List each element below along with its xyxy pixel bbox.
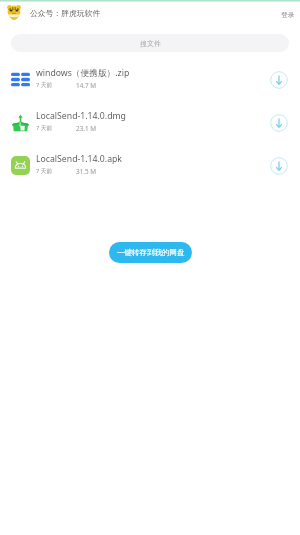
staticText: LocalSend-1.14.0.dmg: [36, 110, 126, 122]
button[interactable]: LocalSend-1.14.0.apk: [0, 144, 300, 187]
button[interactable]: Download: [267, 154, 291, 178]
staticText: 登录: [281, 10, 295, 19]
button[interactable]: 搜文件: [11, 34, 289, 52]
staticText: 公众号：胖虎玩软件: [30, 8, 101, 18]
staticText: 7 天前: [36, 167, 53, 175]
button[interactable]: Download: [267, 111, 291, 135]
staticText: 14.7 M: [76, 81, 97, 90]
button[interactable]: 登录: [275, 5, 295, 22]
staticText: 7 天前: [36, 81, 53, 89]
staticText: 7 天前: [36, 124, 53, 132]
button[interactable]: windows（便携版）.zip: [0, 58, 300, 101]
staticText: 搜文件: [140, 39, 161, 48]
staticText: 23.1 M: [76, 124, 97, 133]
button[interactable]: 一键转存到我的网盘: [109, 242, 192, 263]
button[interactable]: Account avatar: [6, 4, 22, 20]
staticText: LocalSend-1.14.0.apk: [36, 153, 122, 165]
button[interactable]: LocalSend-1.14.0.dmg: [0, 101, 300, 144]
staticText: 一键转存到我的网盘: [117, 248, 185, 257]
button[interactable]: Download: [267, 68, 291, 92]
staticText: 31.5 M: [76, 167, 97, 176]
staticText: windows（便携版）.zip: [36, 67, 130, 79]
